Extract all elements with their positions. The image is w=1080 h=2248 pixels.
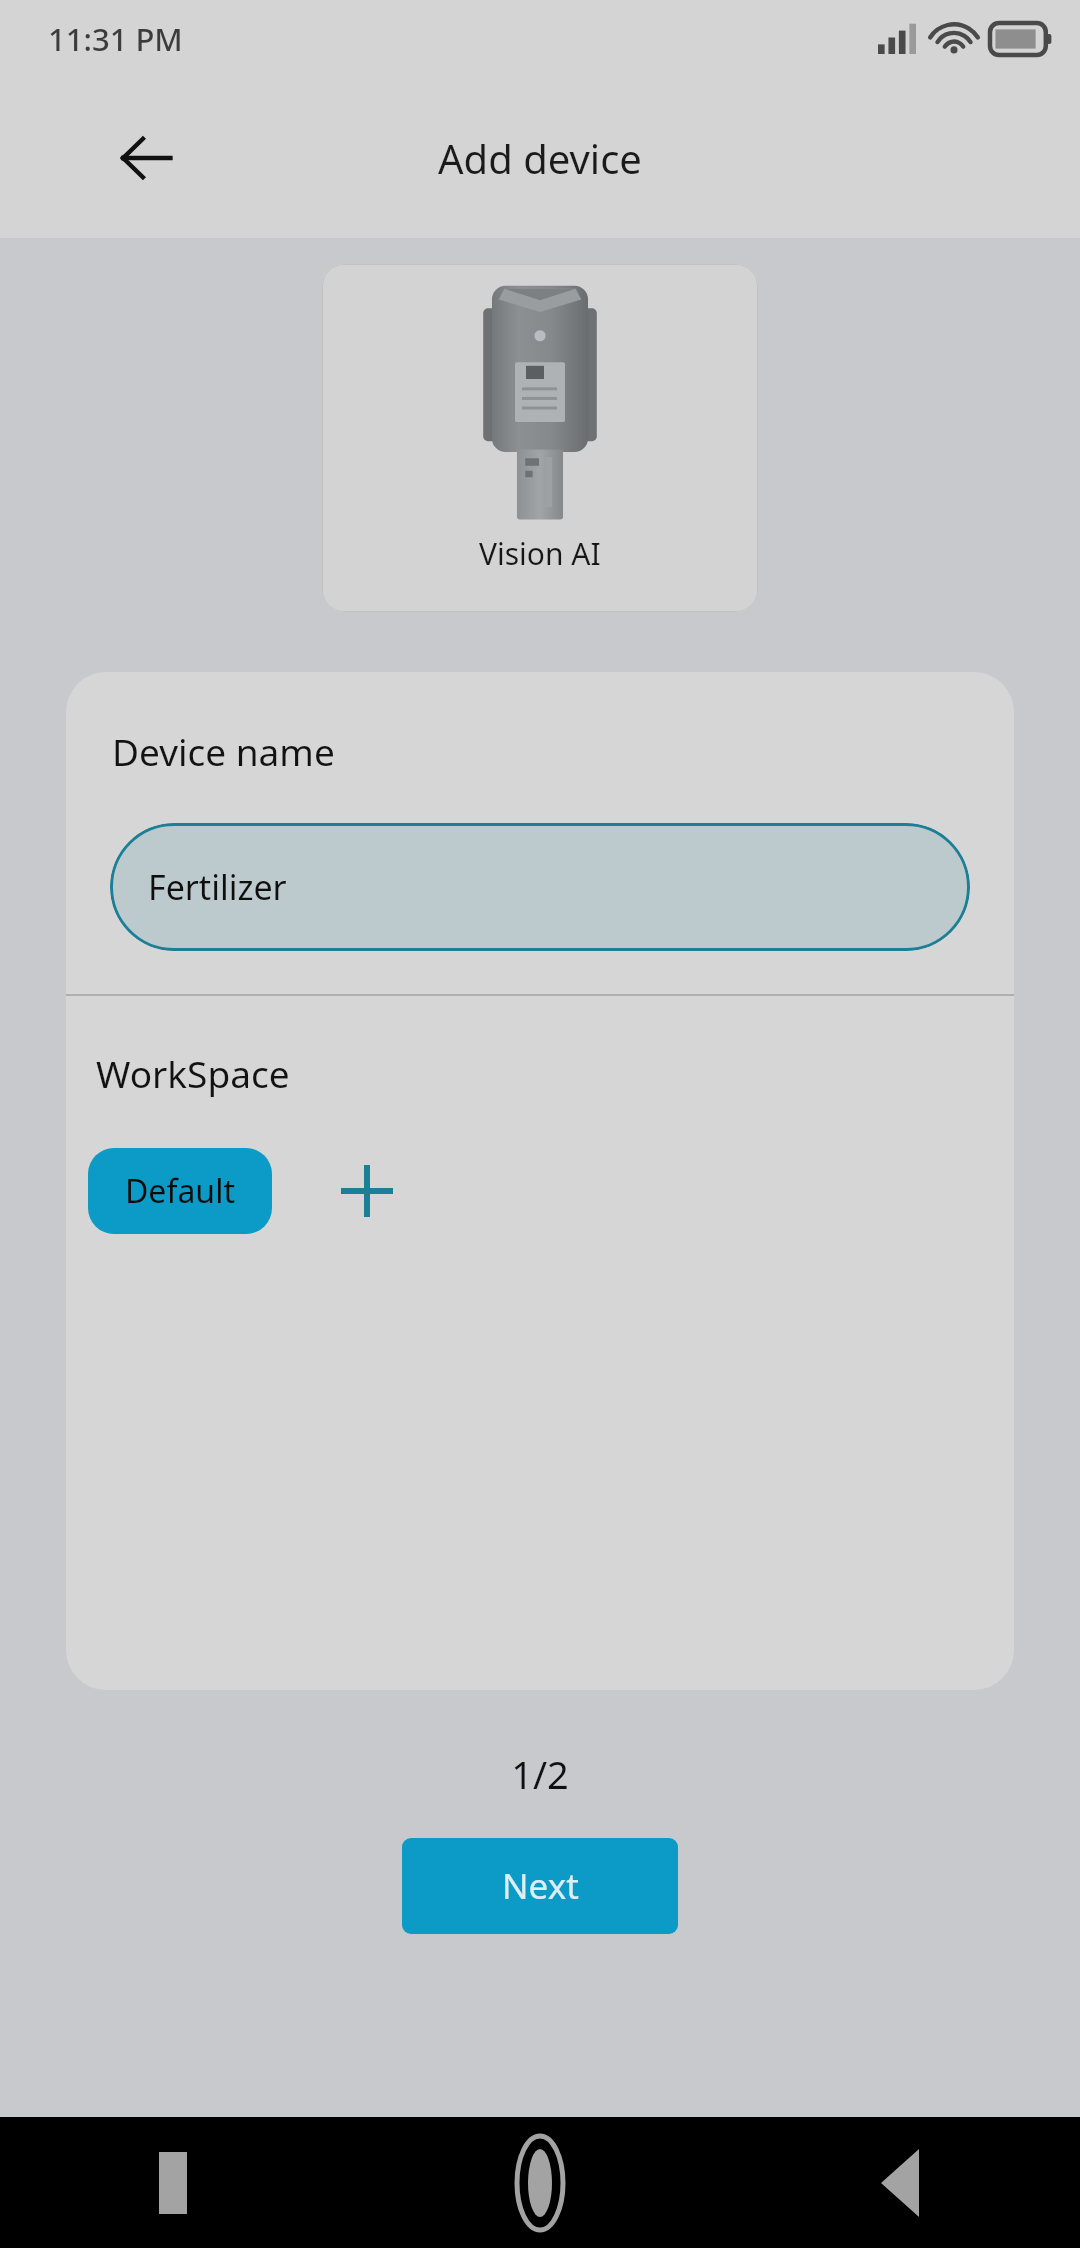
- button[interactable]: Back: [110, 122, 182, 194]
- staticText: Fertilizer: [148, 864, 287, 910]
- button[interactable]: Vision AI: [322, 264, 758, 612]
- button[interactable]: Next: [402, 1838, 678, 1934]
- staticText: Default: [125, 1169, 235, 1213]
- staticText: 11:31 PM: [48, 18, 183, 60]
- button[interactable]: Recents: [0, 2117, 360, 2248]
- button[interactable]: Back: [720, 2117, 1080, 2248]
- button[interactable]: Add workspace: [324, 1148, 410, 1234]
- button[interactable]: Default: [88, 1148, 272, 1234]
- staticText: Device name: [112, 726, 335, 776]
- staticText: Add device: [438, 131, 642, 185]
- staticText: WorkSpace: [96, 1048, 290, 1098]
- button[interactable]: Home: [360, 2117, 720, 2248]
- staticText: Next: [502, 1862, 579, 1910]
- staticText: Vision AI: [479, 533, 601, 574]
- button[interactable]: Fertilizer: [110, 823, 970, 951]
- staticText: 1/2: [0, 1748, 1080, 1800]
